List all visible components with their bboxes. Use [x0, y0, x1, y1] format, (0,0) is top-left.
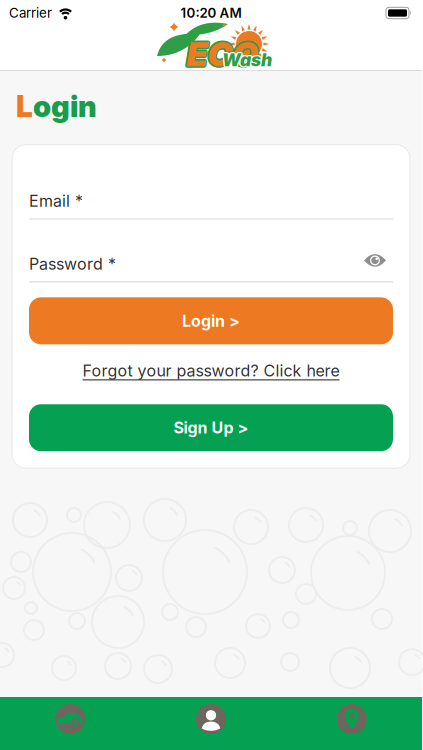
staticText: Email *: [29, 192, 83, 210]
staticText: Wash: [222, 51, 272, 71]
staticText: ECO: [188, 33, 259, 72]
staticText: ECO: [185, 34, 256, 74]
staticText: Wash: [223, 49, 273, 69]
staticText: ECO: [188, 34, 259, 74]
staticText: ECO: [186, 33, 257, 72]
button[interactable]: Sign Up >: [29, 404, 393, 451]
staticText: Wash: [223, 51, 273, 71]
staticText: 10:20 AM: [180, 5, 241, 21]
button[interactable]: Locations: [281, 704, 422, 734]
staticText: Wash: [221, 49, 271, 69]
staticText: L: [16, 89, 33, 124]
staticText: ECO: [188, 35, 259, 75]
button[interactable]: Show password: [364, 257, 393, 271]
staticText: ECO: [185, 35, 256, 75]
staticText: Carrier: [9, 5, 52, 21]
staticText: ECO: [185, 33, 256, 72]
staticText: Forgot your password? Click here: [82, 361, 339, 380]
button[interactable]: Login >: [29, 297, 393, 344]
staticText: Wash: [221, 51, 271, 71]
button[interactable]: Forgot your password? Click here: [29, 361, 393, 380]
staticText: ECO: [186, 36, 257, 75]
staticText: Wash: [223, 50, 273, 70]
button[interactable]: Account: [141, 704, 281, 734]
staticText: Wash: [222, 50, 272, 70]
staticText: Wash: [222, 48, 272, 69]
staticText: Login >: [182, 311, 240, 330]
staticText: ECO: [186, 34, 257, 74]
staticText: Wash: [221, 50, 271, 70]
staticText: ogin: [33, 89, 97, 124]
button[interactable]: Services: [0, 704, 141, 734]
staticText: Password *: [29, 254, 116, 273]
staticText: Sign Up >: [173, 418, 248, 437]
